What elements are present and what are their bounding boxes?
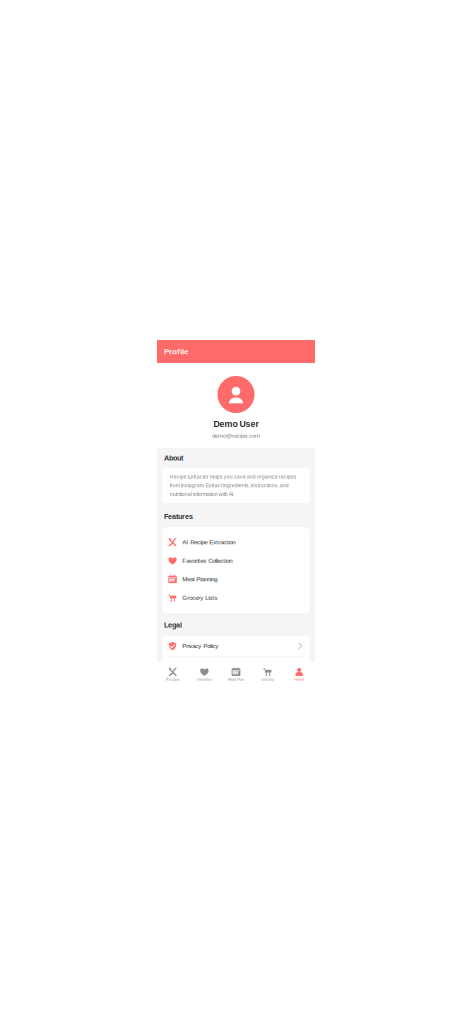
staticText: Privacy Policy — [182, 643, 218, 649]
staticText: Demo User — [213, 419, 258, 429]
staticText: Recipes — [166, 677, 180, 681]
staticText: Profile — [164, 347, 188, 356]
button[interactable]: Meal Planning — [162, 570, 310, 588]
staticText: demo@recipe.com — [212, 432, 260, 439]
staticText: Favorites — [197, 677, 212, 681]
button[interactable]: Privacy Policy — [162, 636, 310, 656]
button[interactable]: Favorites — [189, 662, 220, 681]
staticText: AI Recipe Extraction — [182, 539, 235, 546]
button[interactable]: Profile — [283, 662, 315, 681]
button[interactable]: Meal Plan — [220, 662, 252, 681]
staticText: Meal Planning — [182, 576, 217, 583]
staticText: About — [164, 454, 183, 462]
button[interactable]: Grocery — [252, 662, 283, 681]
button[interactable]: Favorites Collection — [162, 551, 310, 570]
staticText: Meal Plan — [228, 677, 244, 681]
staticText: Grocery Lists — [182, 594, 217, 601]
button[interactable]: AI Recipe Extraction — [162, 533, 310, 551]
staticText: Grocery — [261, 677, 274, 681]
staticText: Profile — [294, 677, 304, 681]
button[interactable]: Grocery Lists — [162, 588, 310, 607]
staticText: Features — [164, 512, 193, 520]
staticText: Recipe Extractor helps you save and orga… — [170, 474, 297, 497]
button[interactable]: Recipes — [157, 662, 189, 681]
staticText: Legal — [164, 621, 182, 629]
staticText: Favorites Collection — [182, 557, 232, 564]
